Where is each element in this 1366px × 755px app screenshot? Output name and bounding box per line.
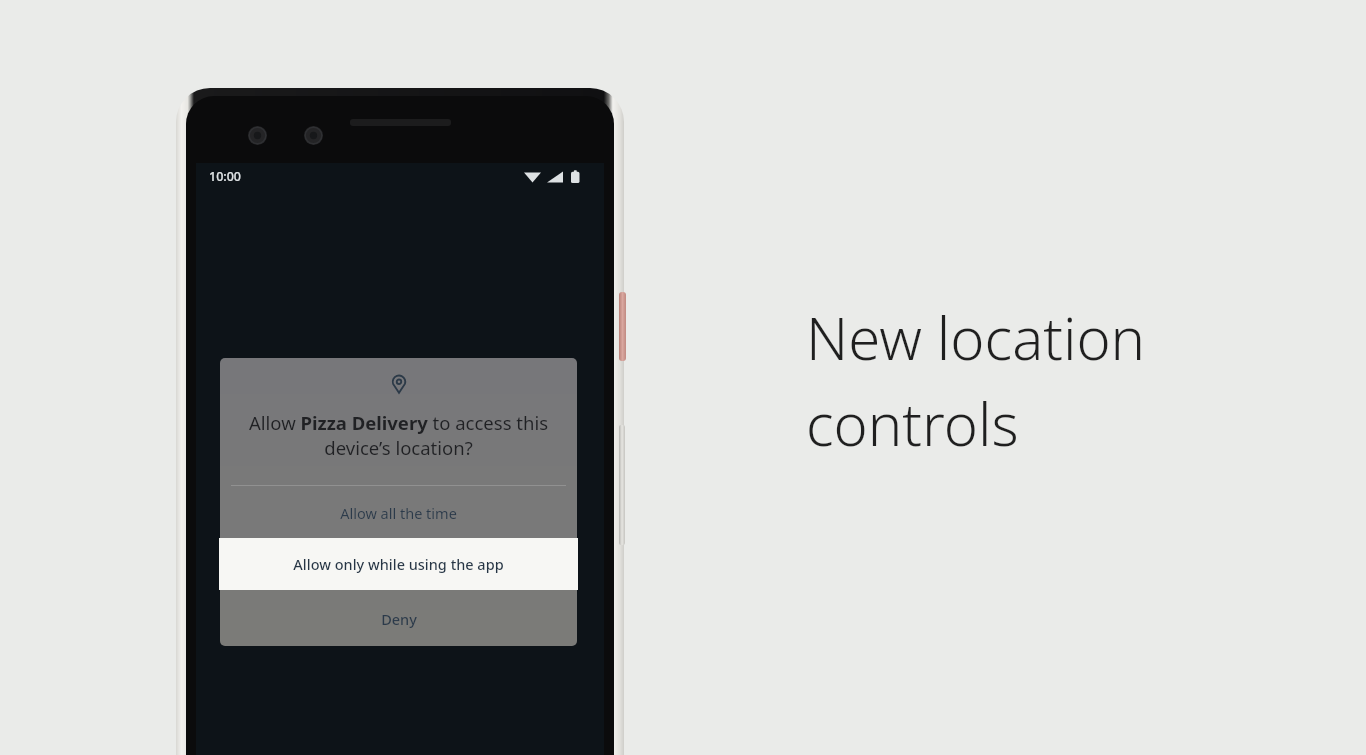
button[interactable]: Volume: [619, 425, 625, 545]
button[interactable]: Allow all the time: [220, 486, 577, 539]
button[interactable]: Power: [619, 292, 626, 361]
staticText: Allow only while using the app: [293, 554, 504, 574]
staticText: Allow Pizza Delivery to access this devi…: [244, 410, 553, 460]
staticText: controls: [806, 384, 1019, 463]
staticText: 10:00: [209, 168, 242, 185]
staticText: Deny: [381, 609, 417, 629]
staticText: New location: [806, 298, 1146, 377]
button[interactable]: Deny: [220, 591, 577, 646]
staticText: Allow all the time: [340, 503, 457, 523]
button[interactable]: Allow only while using the app: [219, 538, 578, 590]
